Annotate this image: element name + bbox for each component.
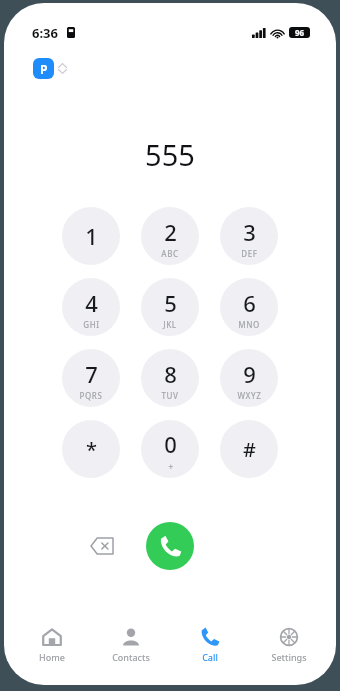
staticText: 5	[164, 288, 177, 318]
staticText: 0	[164, 429, 177, 459]
button[interactable]: Call	[170, 619, 249, 671]
button[interactable]: Settings	[249, 619, 328, 671]
staticText: 6:36	[32, 24, 58, 42]
button[interactable]: *	[62, 420, 120, 478]
button[interactable]: 8	[141, 349, 199, 407]
staticText: 6	[243, 288, 256, 318]
staticText: Home	[39, 651, 65, 663]
staticText: 8	[164, 359, 177, 389]
button[interactable]: #	[220, 420, 278, 478]
staticText: Contacts	[112, 651, 150, 663]
staticText: +	[168, 460, 174, 472]
staticText: 7	[85, 359, 98, 389]
staticText: Settings	[271, 651, 307, 663]
staticText: GHI	[83, 319, 100, 330]
staticText: PQRS	[79, 390, 103, 401]
staticText: *	[86, 436, 97, 463]
button[interactable]: 0	[141, 420, 199, 478]
button[interactable]: 9	[220, 349, 278, 407]
staticText: JKL	[163, 319, 177, 330]
staticText: WXYZ	[237, 390, 262, 401]
button[interactable]: 4	[62, 278, 120, 336]
button[interactable]: 2	[141, 207, 199, 265]
button[interactable]: 7	[62, 349, 120, 407]
button[interactable]: Contacts	[91, 619, 170, 671]
staticText: 2	[164, 217, 177, 247]
button[interactable]: Call	[146, 522, 194, 570]
staticText: 4	[85, 288, 98, 318]
staticText: 555	[145, 135, 195, 174]
button[interactable]: 6	[220, 278, 278, 336]
staticText: DEF	[241, 248, 258, 259]
staticText: TUV	[161, 390, 179, 401]
staticText: #	[243, 436, 256, 463]
staticText: 3	[243, 217, 256, 247]
button[interactable]: 1	[62, 207, 120, 265]
button[interactable]: SIM selector	[31, 56, 69, 81]
staticText: 1	[85, 221, 98, 251]
button[interactable]: Home	[12, 619, 91, 671]
staticText: ABC	[161, 248, 179, 259]
button[interactable]: Backspace	[82, 526, 122, 566]
button[interactable]: 3	[220, 207, 278, 265]
staticText: MNO	[238, 319, 260, 330]
staticText: 96	[295, 27, 305, 38]
button[interactable]: 5	[141, 278, 199, 336]
staticText: P	[40, 61, 48, 77]
staticText: 9	[243, 359, 256, 389]
staticText: Call	[202, 651, 218, 663]
